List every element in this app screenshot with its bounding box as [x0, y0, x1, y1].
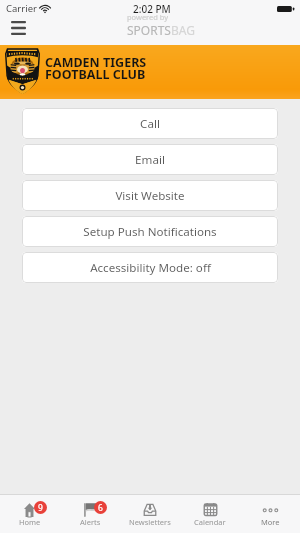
button[interactable]: Visit Website: [22, 180, 278, 211]
staticText: Home: [19, 517, 41, 527]
staticText: Carrier: [6, 2, 37, 15]
button[interactable]: Newsletters: [120, 495, 180, 533]
button[interactable]: Email: [22, 144, 278, 175]
button[interactable]: Call: [22, 108, 278, 139]
staticText: Accessibility Mode: off: [90, 260, 211, 276]
staticText: Calendar: [194, 517, 226, 527]
staticText: Setup Push Notifications: [83, 224, 217, 240]
staticText: Alerts: [80, 517, 101, 527]
staticText: 2:02 PM: [133, 2, 171, 16]
staticText: powered by: [127, 12, 169, 22]
staticText: Email: [135, 152, 165, 168]
staticText: Newsletters: [129, 517, 171, 527]
button[interactable]: More: [240, 495, 300, 533]
staticText: More: [261, 517, 280, 527]
staticText: SPORTS: [127, 22, 171, 38]
staticText: Visit Website: [115, 188, 185, 204]
staticText: 6: [98, 502, 103, 514]
staticText: CAMDEN TIGERS: [45, 54, 147, 71]
button[interactable]: Setup Push Notifications: [22, 216, 278, 247]
button[interactable]: Menu: [0, 15, 35, 41]
button[interactable]: 9: [0, 495, 60, 533]
staticText: FOOTBALL CLUB: [45, 66, 146, 83]
staticText: Call: [140, 116, 160, 132]
staticText: 9: [38, 502, 43, 514]
staticText: BAG: [171, 22, 195, 38]
button[interactable]: 6: [60, 495, 120, 533]
button[interactable]: Calendar: [180, 495, 240, 533]
button[interactable]: Accessibility Mode: off: [22, 252, 278, 283]
